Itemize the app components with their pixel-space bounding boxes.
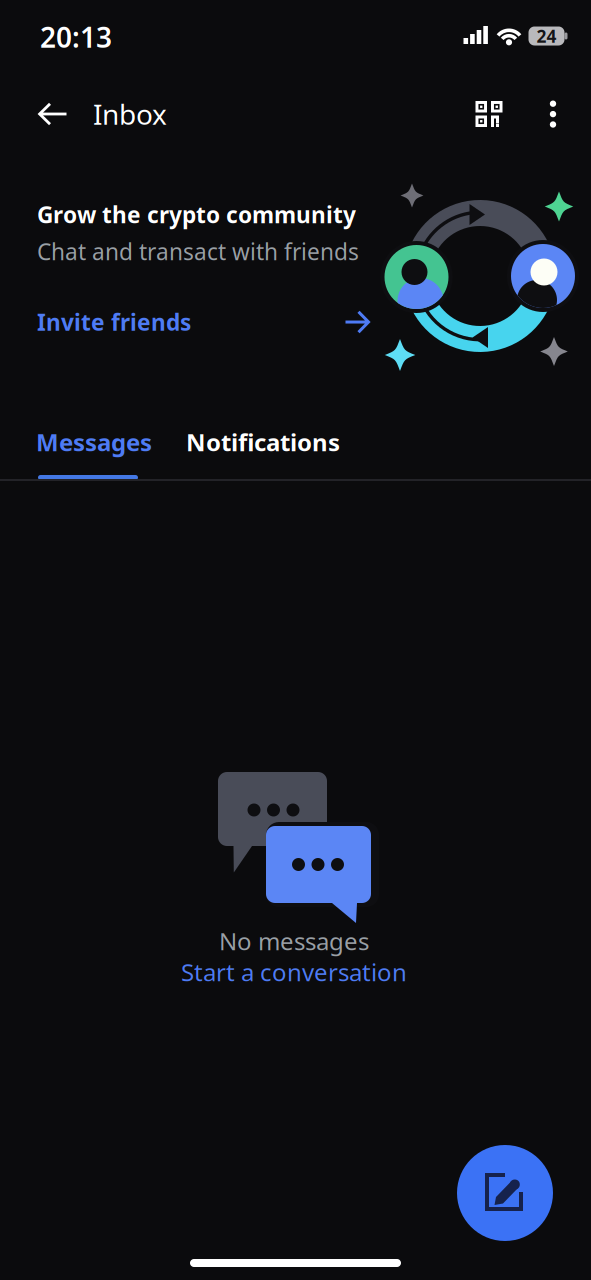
button[interactable]: Invite friends: [37, 300, 237, 344]
button[interactable]: Messages: [44, 411, 144, 473]
button[interactable]: Notifications: [196, 411, 330, 473]
button[interactable]: Invite friends: [335, 300, 379, 344]
button[interactable]: Scan QR code: [463, 88, 515, 140]
staticText: Invite friends: [37, 307, 191, 337]
staticText: No messages: [219, 925, 369, 957]
button[interactable]: Back: [24, 88, 82, 140]
staticText: 20:13: [40, 18, 112, 56]
staticText: 24: [536, 24, 556, 47]
staticText: Messages: [36, 426, 152, 458]
button[interactable]: Start a conversation: [179, 952, 409, 992]
staticText: Chat and transact with friends: [37, 236, 359, 267]
staticText: Inbox: [93, 95, 167, 133]
button[interactable]: Compose message: [457, 1145, 553, 1241]
staticText: Start a conversation: [181, 956, 407, 988]
staticText: Grow the crypto community: [37, 199, 356, 229]
staticText: Notifications: [186, 426, 340, 458]
button[interactable]: More options: [529, 88, 577, 140]
